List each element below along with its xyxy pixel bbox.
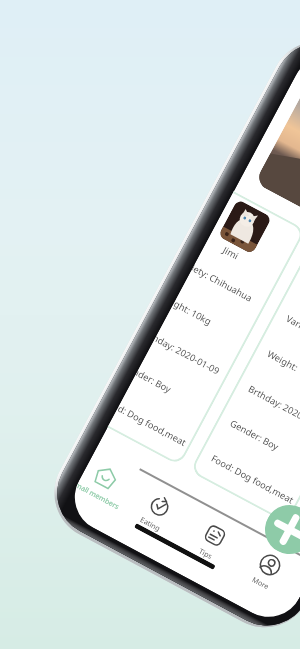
button[interactable]: Add pet — [256, 496, 300, 563]
staticText: Small members — [74, 481, 121, 512]
staticText: Variety: Husky — [284, 312, 300, 351]
staticText: Jimi — [221, 243, 241, 262]
staticText: Brthday: 2020-05-21 — [247, 382, 300, 434]
button[interactable]: More — [230, 531, 300, 603]
button[interactable]: Eating — [120, 472, 198, 545]
button[interactable]: Lucky — [189, 235, 300, 524]
staticText: Weight: 10kg — [172, 297, 214, 327]
staticText: Brthday: 2020-01-09 — [153, 332, 223, 377]
staticText: Gender: Boy — [228, 416, 281, 452]
staticText: Food: Dog food,meat — [209, 451, 296, 506]
staticText: Tips — [197, 546, 214, 562]
staticText: Gender: Boy — [134, 366, 174, 395]
button[interactable] — [255, 79, 300, 283]
button[interactable]: Jimi — [107, 191, 300, 466]
staticText: Food: Dog food,meat — [116, 401, 189, 448]
staticText: Variety: Chihuahua — [190, 261, 255, 304]
staticText: Weight: 10kg — [265, 347, 300, 385]
button[interactable]: Tips — [175, 501, 253, 574]
button[interactable]: Small members — [74, 447, 143, 515]
staticText: More — [250, 575, 271, 592]
staticText: Eating — [138, 515, 162, 534]
